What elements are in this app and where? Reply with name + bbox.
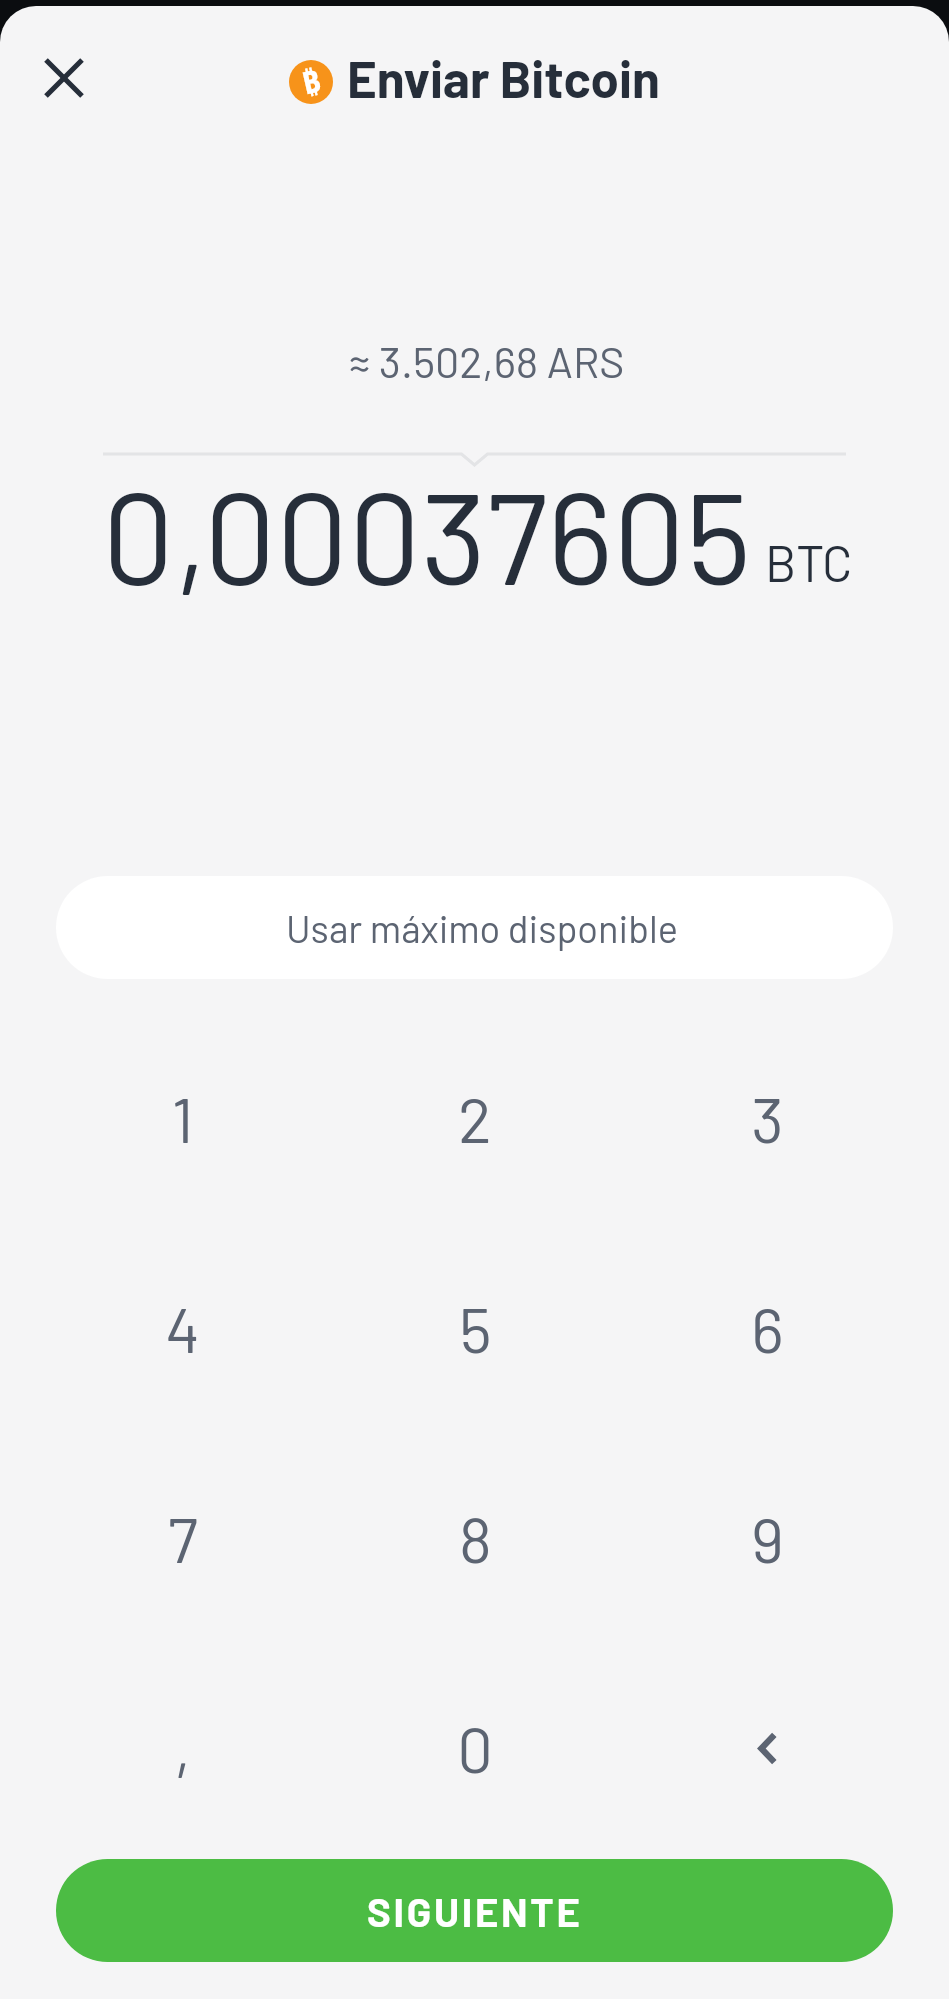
button[interactable]: , bbox=[36, 1643, 329, 1853]
button[interactable]: 9 bbox=[621, 1433, 913, 1643]
staticText: SIGUIENTE bbox=[367, 1887, 583, 1935]
staticText: BTC bbox=[765, 532, 853, 592]
staticText: 9 bbox=[751, 1500, 784, 1576]
button[interactable]: 7 bbox=[36, 1433, 329, 1643]
staticText: 5 bbox=[459, 1290, 492, 1366]
button[interactable]: 3 bbox=[621, 1013, 913, 1223]
button[interactable]: 8 bbox=[329, 1433, 621, 1643]
staticText: 0 bbox=[457, 1710, 493, 1786]
staticText: 0,00037605 bbox=[102, 457, 752, 611]
staticText: 3 bbox=[751, 1080, 784, 1156]
button[interactable]: 6 bbox=[621, 1223, 913, 1433]
button[interactable]: Borrar bbox=[621, 1643, 913, 1853]
button[interactable]: 4 bbox=[36, 1223, 329, 1433]
staticText: Usar máximo disponible bbox=[286, 905, 678, 951]
button[interactable]: SIGUIENTE bbox=[56, 1859, 893, 1962]
staticText: 8 bbox=[459, 1500, 492, 1576]
button[interactable]: 0 bbox=[329, 1643, 621, 1853]
staticText: 2 bbox=[458, 1080, 492, 1156]
button[interactable]: Cerrar bbox=[26, 40, 102, 116]
staticText: ₿ bbox=[297, 60, 324, 103]
staticText: 1 bbox=[171, 1080, 194, 1156]
button[interactable]: Usar máximo disponible bbox=[56, 876, 893, 979]
button[interactable]: 1 bbox=[36, 1013, 329, 1223]
button[interactable]: 2 bbox=[329, 1013, 621, 1223]
staticText: Enviar Bitcoin bbox=[347, 47, 660, 108]
staticText: ≈ 3.502,68 ARS bbox=[12, 335, 949, 387]
staticText: 4 bbox=[165, 1290, 200, 1366]
button[interactable]: 5 bbox=[329, 1223, 621, 1433]
staticText: 7 bbox=[168, 1500, 198, 1576]
staticText: , bbox=[174, 1710, 191, 1786]
staticText: 6 bbox=[751, 1290, 784, 1366]
